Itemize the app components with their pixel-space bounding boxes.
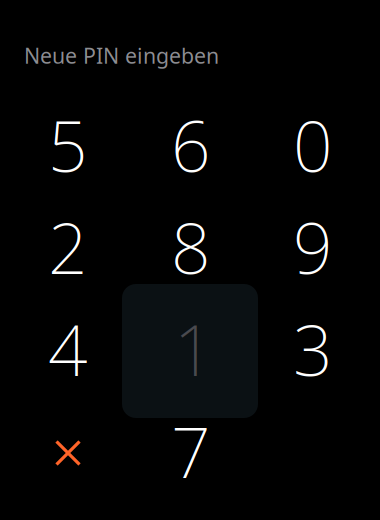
staticText: 4 [48, 303, 88, 395]
staticText: 8 [171, 201, 211, 293]
staticText: 9 [293, 201, 333, 293]
staticText: 6 [171, 99, 211, 191]
staticText: 2 [48, 201, 88, 293]
button[interactable]: 5 [6, 94, 129, 196]
button[interactable]: 3 [251, 298, 374, 400]
button[interactable]: 4 [6, 298, 129, 400]
staticText: 0 [293, 99, 333, 191]
button[interactable]: 0 [251, 94, 374, 196]
staticText: 3 [293, 303, 333, 395]
button[interactable]: 1 [126, 282, 262, 416]
staticText: 7 [171, 405, 211, 497]
staticText: 5 [48, 99, 88, 191]
button[interactable]: 7 [129, 400, 252, 502]
button[interactable]: Löschen [6, 402, 129, 504]
button[interactable]: 9 [251, 196, 374, 298]
staticText: Neue PIN eingeben [24, 41, 219, 70]
button[interactable]: 6 [129, 94, 252, 196]
button[interactable]: 2 [6, 196, 129, 298]
staticText: 1 [174, 303, 214, 395]
button[interactable]: 8 [129, 196, 252, 298]
